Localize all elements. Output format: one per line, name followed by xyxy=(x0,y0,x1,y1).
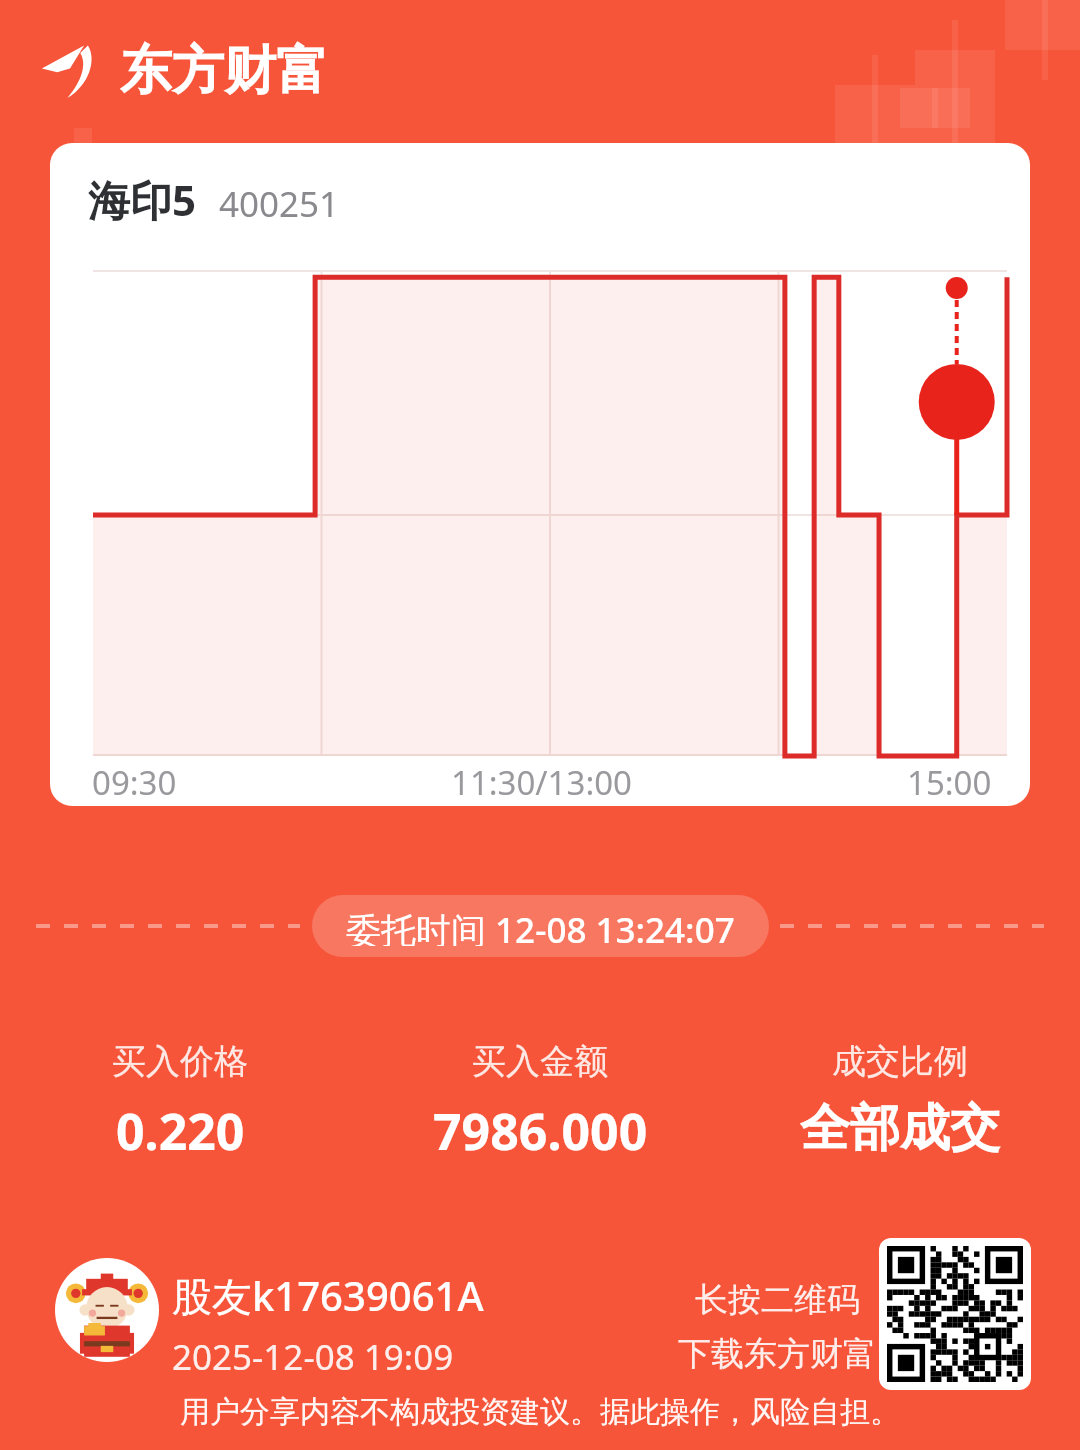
staticText: 15:00 xyxy=(907,760,992,805)
staticText: 7986.000 xyxy=(433,1097,648,1165)
button[interactable]: 海印5 xyxy=(50,143,1030,806)
button[interactable]: 东方财富 logo xyxy=(38,38,328,104)
staticText: 全部成交 xyxy=(800,1097,1000,1160)
staticText: 2025-12-08 19:09 xyxy=(172,1333,454,1381)
staticText: 股友k17639061A xyxy=(172,1268,484,1323)
button[interactable]: 买入价格 xyxy=(0,1040,360,1165)
staticText: 0.220 xyxy=(116,1097,245,1165)
staticText: 委托时间 12-08 13:24:07 xyxy=(346,906,735,946)
button[interactable]: QR code to download app xyxy=(879,1238,1031,1390)
staticText: 成交比例 xyxy=(832,1040,968,1083)
staticText: 下载东方财富 xyxy=(678,1333,876,1375)
staticText: 09:30 xyxy=(92,760,177,805)
staticText: 买入金额 xyxy=(472,1040,608,1083)
staticText: 买入价格 xyxy=(112,1040,248,1083)
staticText: 11:30/13:00 xyxy=(451,760,632,805)
button[interactable]: User avatar xyxy=(55,1258,159,1362)
button[interactable]: 成交比例 xyxy=(720,1040,1080,1160)
staticText: 400251 xyxy=(219,180,340,228)
staticText: 海印5 xyxy=(88,171,197,228)
button[interactable]: 委托时间 12-08 13:24:07 xyxy=(312,895,769,957)
staticText: 用户分享内容不构成投资建议。据此操作，风险自担。 xyxy=(0,1393,1080,1431)
button[interactable]: 买入金额 xyxy=(360,1040,720,1165)
other: 东方财富 logo xyxy=(38,39,102,103)
staticText: 长按二维码 xyxy=(695,1279,860,1321)
staticText: 东方财富 xyxy=(120,38,328,104)
